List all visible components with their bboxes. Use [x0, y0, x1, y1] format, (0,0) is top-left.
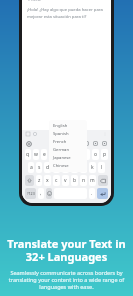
staticText: w	[34, 151, 38, 158]
staticText: German	[53, 147, 69, 153]
staticText: o	[94, 151, 98, 158]
staticText: z	[38, 177, 41, 184]
button[interactable]: l	[98, 162, 105, 173]
staticText: Title	[27, 0, 41, 4]
button[interactable]: s	[36, 162, 42, 173]
button[interactable]: Enter	[97, 188, 108, 199]
button[interactable]: k	[89, 162, 96, 173]
staticText: Translate your Text in 32+ Languages	[7, 236, 126, 264]
staticText: m	[90, 177, 95, 184]
button[interactable]: t	[57, 149, 63, 160]
staticText: n	[82, 177, 86, 184]
staticText: ¡Hola! ¿Hay algo que pueda hacer para me…	[27, 7, 106, 19]
button[interactable]: o	[92, 149, 99, 160]
staticText: x	[46, 177, 49, 184]
button[interactable]: Tool 6	[101, 140, 108, 147]
staticText: q	[26, 151, 30, 158]
staticText: a	[30, 164, 33, 171]
button[interactable]: f	[53, 162, 60, 173]
button[interactable]: French	[49, 138, 87, 146]
button[interactable]: p	[101, 149, 108, 160]
staticText: p	[103, 151, 107, 158]
staticText: v	[64, 177, 67, 184]
button[interactable]: x	[44, 175, 51, 186]
staticText: Seamlessly communicate across borders by…	[7, 269, 126, 290]
staticText: b	[73, 177, 77, 184]
staticText: ,	[40, 190, 42, 197]
button[interactable]: Comma	[38, 188, 44, 199]
button[interactable]: n	[80, 175, 87, 186]
button[interactable]: g	[62, 162, 69, 173]
button[interactable]: e	[41, 149, 47, 160]
staticText: .	[91, 190, 93, 197]
button[interactable]: a	[28, 162, 34, 173]
staticText: g	[64, 164, 68, 171]
button[interactable]: r	[49, 149, 55, 160]
button[interactable]: Tool 2	[65, 140, 72, 147]
button[interactable]: c	[53, 175, 60, 186]
staticText: c	[55, 177, 58, 184]
button[interactable]: b	[71, 175, 78, 186]
staticText: k	[91, 164, 94, 171]
staticText: ?123	[27, 191, 35, 196]
staticText: t	[59, 151, 61, 158]
staticText: English	[53, 123, 68, 129]
button[interactable]: English	[49, 122, 87, 130]
staticText: r	[51, 151, 54, 158]
button[interactable]: Emoji	[46, 188, 52, 199]
button[interactable]: w	[33, 149, 39, 160]
button[interactable]: Backspace	[98, 175, 108, 186]
button[interactable]: m	[89, 175, 96, 186]
staticText: Chinese	[53, 163, 69, 169]
button[interactable]: Tool 5	[92, 140, 99, 147]
button[interactable]: Tool 1	[56, 140, 63, 147]
button[interactable]: Japanese	[49, 154, 87, 162]
staticText: f	[56, 164, 58, 171]
button[interactable]: ?123	[25, 188, 36, 199]
staticText: Japanese	[53, 155, 71, 161]
staticText: Spanish	[53, 131, 69, 137]
staticText: d	[46, 164, 50, 171]
staticText: French	[53, 139, 67, 145]
button[interactable]: German	[49, 146, 87, 154]
staticText: y	[67, 151, 70, 158]
button[interactable]: z	[36, 175, 42, 186]
staticText: s	[38, 164, 41, 171]
button[interactable]: Period	[89, 188, 95, 199]
button[interactable]: q	[25, 149, 31, 160]
button[interactable]: Settings	[25, 140, 32, 147]
button[interactable]: y	[65, 149, 72, 160]
button[interactable]: Chinese	[49, 162, 87, 170]
button[interactable]: Shift	[25, 175, 34, 186]
button[interactable]: d	[44, 162, 51, 173]
button[interactable]: Tool 4	[83, 140, 90, 147]
button[interactable]: v	[62, 175, 69, 186]
staticText: e	[43, 151, 46, 158]
staticText: l	[101, 164, 103, 171]
button[interactable]: Spanish	[49, 130, 87, 138]
